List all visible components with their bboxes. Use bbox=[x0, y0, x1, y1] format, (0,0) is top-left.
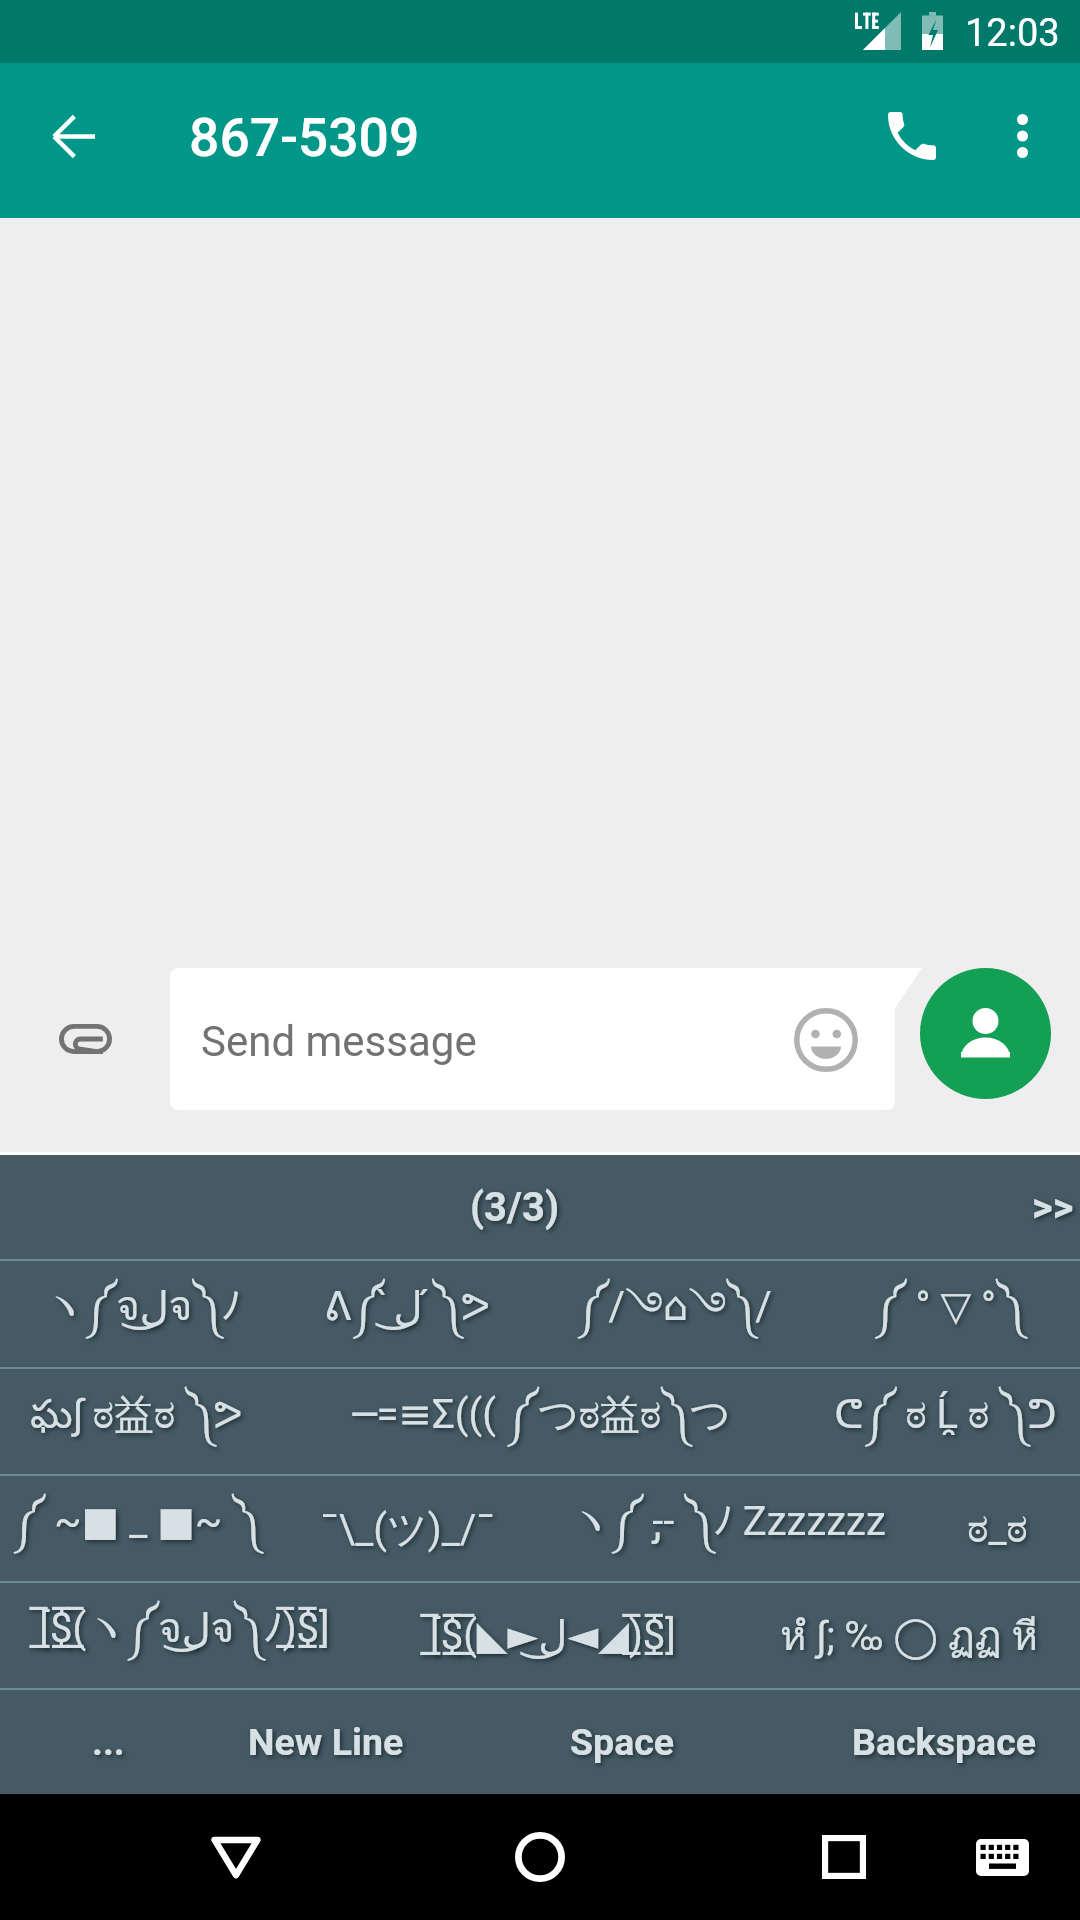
button[interactable]: ᕦ༼ ಠ Ĺ̯ ಠ ༽ᕤ bbox=[810, 1369, 1080, 1474]
button[interactable]: ヽ༼ -̡- ༽ﾉ Zzzzzzz bbox=[542, 1476, 914, 1581]
staticText: [̲̅$̲̅(̲̅◣►ل͜◄◢)̲̅$̲̅] bbox=[430, 1612, 676, 1659]
button[interactable]: More options bbox=[966, 85, 1078, 197]
staticText: 867-5309 bbox=[189, 106, 420, 169]
staticText: ఘ∫ ಠ益ಠ ༽ᕗ bbox=[30, 1369, 243, 1474]
button[interactable]: ༼ ° ▽ °༽ bbox=[818, 1261, 1080, 1367]
button[interactable]: ─=≡Σ((( ༼つಠ益ಠ༽つ bbox=[272, 1369, 810, 1474]
staticText: (3/3) bbox=[470, 1184, 560, 1231]
button[interactable]: Back bbox=[176, 1797, 296, 1917]
staticText: Send message bbox=[201, 1017, 477, 1066]
button[interactable]: Home bbox=[480, 1797, 600, 1917]
button[interactable]: Navigate up bbox=[25, 88, 121, 184]
staticText: ಠ_ಠ bbox=[967, 1505, 1028, 1552]
staticText: ᕦ༼ ಠ Ĺ̯ ಠ ༽ᕤ bbox=[834, 1369, 1057, 1474]
staticText: หํ ∫; ‰ ◯ ฏฏ หี bbox=[780, 1604, 1038, 1668]
staticText: Space bbox=[570, 1720, 675, 1764]
button[interactable]: Attach bbox=[30, 984, 140, 1094]
button[interactable]: ༼ ~■ _ ■~ ༽ bbox=[0, 1476, 272, 1581]
staticText: ... bbox=[92, 1720, 125, 1764]
button[interactable]: Space bbox=[436, 1690, 808, 1794]
button[interactable]: ᕕ༼ ̀ل͜ ́༽ᕗ bbox=[285, 1261, 529, 1367]
button[interactable]: [̲̅$̲̅(̲̅◣►ل͜◄◢)̲̅$̲̅] bbox=[368, 1583, 738, 1688]
staticText: ᕕ༼ ̀ل͜ ́༽ᕗ bbox=[324, 1261, 490, 1367]
staticText: ヽ༼ -̡- ༽ﾉ Zzzzzzz bbox=[570, 1476, 886, 1581]
button[interactable]: Send message bbox=[920, 968, 1051, 1099]
button[interactable]: [̲̅$̲̅(̲̅ヽ༼จل͜จ༽ﾉ)̲̅$̲̅] bbox=[0, 1583, 368, 1688]
button[interactable]: หํ ∫; ‰ ◯ ฏฏ หี bbox=[738, 1583, 1080, 1688]
staticText: ༼ ~■ _ ■~ ༽ bbox=[12, 1476, 261, 1581]
staticText: ༼ ° ▽ °༽ bbox=[873, 1261, 1025, 1367]
button[interactable]: Call bbox=[856, 85, 968, 197]
button[interactable]: Next page bbox=[976, 1155, 1080, 1259]
staticText: New Line bbox=[248, 1720, 404, 1764]
button[interactable]: ఘ∫ ಠ益ಠ ༽ᕗ bbox=[0, 1369, 272, 1474]
button[interactable]: Send message bbox=[170, 968, 922, 1110]
staticText: ༼/࿓⌂࿓༽/ bbox=[576, 1261, 772, 1367]
staticText: Backspace bbox=[852, 1720, 1037, 1764]
button[interactable]: Backspace bbox=[808, 1690, 1080, 1794]
staticText: 12:03 bbox=[965, 11, 1060, 56]
button[interactable]: ヽ༼จل͜จ༽ﾉ bbox=[0, 1261, 285, 1367]
staticText: ¯\_(ツ)_/¯ bbox=[320, 1504, 495, 1554]
button[interactable]: New Line bbox=[216, 1690, 436, 1794]
button[interactable]: ... bbox=[0, 1690, 216, 1794]
button[interactable]: ¯\_(ツ)_/¯ bbox=[272, 1476, 542, 1581]
button[interactable]: Change keyboard bbox=[942, 1797, 1062, 1917]
staticText: ヽ༼จل͜จ༽ﾉ bbox=[44, 1261, 241, 1367]
staticText: [̲̅$̲̅(̲̅ヽ༼จل͜จ༽ﾉ)̲̅$̲̅] bbox=[39, 1583, 330, 1688]
button[interactable]: Recent apps bbox=[784, 1797, 904, 1917]
staticText: >> bbox=[1032, 1184, 1074, 1231]
staticText: ─=≡Σ((( ༼つಠ益ಠ༽つ bbox=[352, 1369, 731, 1474]
button[interactable]: Insert emoji bbox=[786, 999, 866, 1079]
button[interactable]: ಠ_ಠ bbox=[914, 1476, 1080, 1581]
button[interactable]: ༼/࿓⌂࿓༽/ bbox=[529, 1261, 818, 1367]
